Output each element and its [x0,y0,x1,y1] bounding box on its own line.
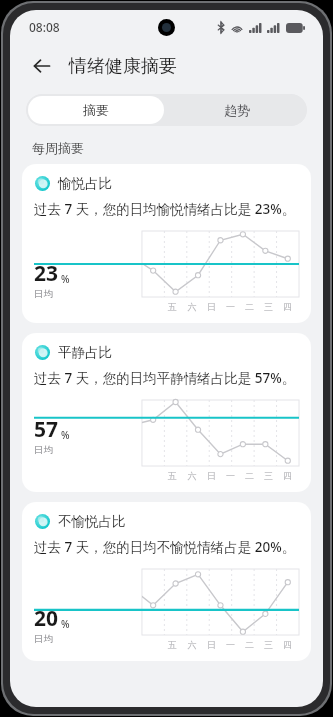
button[interactable]: 摘要 [28,96,164,124]
staticText: 四 [278,301,297,312]
staticText: 一 [221,470,240,481]
button[interactable]: Back [26,50,58,82]
staticText: 四 [278,639,297,650]
staticText: 日均 [34,633,53,645]
staticText: 过去 7 天，您的日均不愉悦情绪占是 20%。 [34,538,296,556]
staticText: 二 [240,470,259,481]
staticText: 每周摘要 [32,140,84,156]
staticText: 三 [259,301,278,312]
staticText: 情绪健康摘要 [69,55,177,78]
button[interactable]: 趋势 [166,94,307,126]
staticText: 二 [240,639,259,650]
staticText: 四 [278,470,297,481]
staticText: 日 [202,301,221,312]
staticText: 二 [240,301,259,312]
staticText: 57 [34,415,59,444]
staticText: % [61,428,70,442]
staticText: 愉悦占比 [58,175,112,192]
staticText: 三 [259,639,278,650]
staticText: 日 [202,639,221,650]
staticText: 日均 [34,444,53,456]
staticText: 20 [34,604,59,633]
staticText: 日均 [34,288,53,300]
staticText: % [61,617,70,631]
staticText: 日 [202,470,221,481]
staticText: 08:08 [29,19,60,35]
button[interactable]: 愉悦占比 [22,164,311,323]
staticText: 过去 7 天，您的日均平静情绪占比是 57%。 [34,369,296,387]
button[interactable]: 不愉悦占比 [22,502,311,661]
button[interactable]: 平静占比 [22,333,311,492]
staticText: 五 [162,639,182,650]
staticText: 过去 7 天，您的日均愉悦情绪占比是 23%。 [34,200,296,218]
staticText: 六 [182,301,202,312]
staticText: 三 [259,470,278,481]
staticText: 一 [221,301,240,312]
staticText: 不愉悦占比 [58,513,126,530]
staticText: 五 [162,470,182,481]
staticText: 23 [34,259,59,288]
staticText: 摘要 [83,102,109,118]
staticText: 一 [221,639,240,650]
staticText: 平静占比 [58,344,112,361]
staticText: 趋势 [224,102,250,118]
staticText: 五 [162,301,182,312]
staticText: 六 [182,639,202,650]
staticText: % [61,272,70,286]
staticText: 六 [182,470,202,481]
